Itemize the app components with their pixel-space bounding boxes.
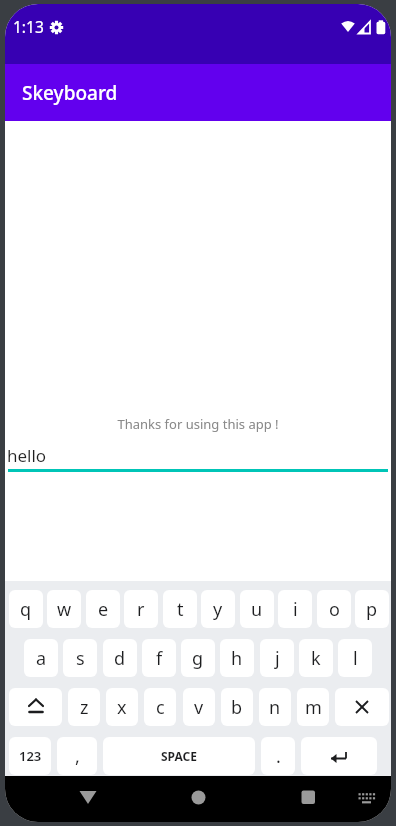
staticText: j	[275, 646, 280, 671]
staticText: y	[213, 597, 223, 622]
staticText: Skeyboard	[22, 80, 118, 106]
staticText: g	[192, 646, 204, 671]
staticText: n	[269, 695, 281, 720]
staticText: h	[231, 646, 243, 671]
staticText: i	[293, 597, 298, 622]
staticText: c	[156, 695, 165, 720]
staticText: SPACE	[161, 748, 197, 764]
staticText: m	[305, 695, 322, 720]
staticText: s	[76, 646, 85, 671]
staticText: Thanks for using this app !	[5, 415, 391, 433]
staticText: p	[366, 597, 378, 622]
staticText: .	[276, 744, 281, 769]
staticText: z	[80, 695, 89, 720]
staticText: o	[329, 597, 340, 622]
staticText: e	[98, 597, 109, 622]
staticText: t	[177, 597, 184, 622]
staticText: k	[311, 646, 321, 671]
staticText: a	[36, 646, 47, 671]
staticText: r	[137, 597, 145, 622]
staticText: w	[57, 597, 72, 622]
staticText: f	[156, 646, 163, 671]
staticText: b	[231, 695, 243, 720]
staticText: q	[20, 597, 32, 622]
staticText: u	[251, 597, 263, 622]
staticText: v	[194, 695, 204, 720]
staticText: l	[353, 646, 358, 671]
staticText: 123	[19, 747, 42, 765]
staticText: d	[114, 646, 126, 671]
staticText: 1:13	[13, 16, 44, 37]
staticText: ,	[75, 744, 80, 769]
staticText: x	[117, 695, 127, 720]
staticText: hello	[7, 444, 47, 467]
